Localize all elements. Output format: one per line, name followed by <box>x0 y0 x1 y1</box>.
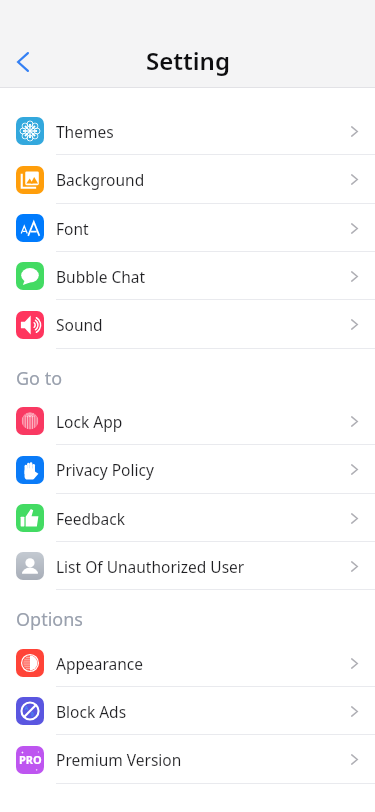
button[interactable]: Back <box>1 40 45 84</box>
staticText: Go to <box>16 366 63 391</box>
staticText: Appearance <box>56 653 143 674</box>
staticText: Block Ads <box>56 701 127 722</box>
button[interactable]: Privacy Policy <box>0 445 375 494</box>
button[interactable]: Feedback <box>0 494 375 542</box>
button[interactable]: List Of Unauthorized User <box>0 542 375 590</box>
staticText: Background <box>56 169 145 190</box>
button[interactable]: Background <box>0 155 375 204</box>
staticText: Feedback <box>56 508 126 529</box>
staticText: Privacy Policy <box>56 459 154 480</box>
staticText: Font <box>56 218 89 239</box>
button[interactable]: Appearance <box>0 639 375 687</box>
staticText: Bubble Chat <box>56 266 146 287</box>
button[interactable]: Bubble Chat <box>0 252 375 300</box>
button[interactable]: Font <box>0 204 375 252</box>
staticText: Lock App <box>56 411 123 432</box>
staticText: List Of Unauthorized User <box>56 556 245 577</box>
staticText: PRO <box>19 752 42 767</box>
staticText: Themes <box>56 121 114 142</box>
staticText: Sound <box>56 314 103 335</box>
staticText: Options <box>16 607 83 632</box>
button[interactable]: Block Ads <box>0 687 375 735</box>
button[interactable]: Themes <box>0 107 375 155</box>
staticText: Premium Version <box>56 749 182 770</box>
button[interactable]: Lock App <box>0 397 375 445</box>
button[interactable]: PRO <box>0 735 375 784</box>
staticText: Setting <box>146 44 230 77</box>
button[interactable]: Sound <box>0 300 375 349</box>
